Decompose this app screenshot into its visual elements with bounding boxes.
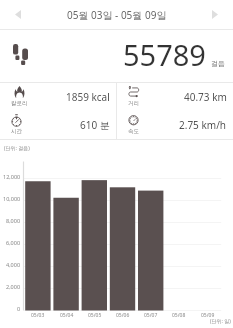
- button[interactable]: 칼로리: [11, 83, 110, 111]
- staticText: 6,000: [6, 239, 21, 246]
- staticText: 05/07: [144, 312, 158, 319]
- staticText: 1859 kcal: [66, 90, 110, 104]
- staticText: 05/06: [116, 312, 130, 319]
- button[interactable]: 거리: [128, 83, 227, 111]
- staticText: 시간: [11, 128, 22, 135]
- staticText: 2.75 km/h: [179, 118, 227, 132]
- button[interactable]: Next week: [197, 0, 233, 29]
- staticText: (단위: 걸음): [4, 145, 30, 152]
- staticText: 40.73 km: [184, 90, 227, 104]
- button[interactable]: Previous week: [0, 0, 36, 29]
- staticText: 55789: [123, 35, 206, 74]
- staticText: 0: [17, 305, 21, 312]
- button[interactable]: 시간: [11, 111, 110, 139]
- staticText: 05/09: [201, 312, 215, 319]
- staticText: 05/05: [88, 312, 102, 319]
- button[interactable]: 55789: [13, 30, 225, 82]
- staticText: 칼로리: [11, 100, 28, 107]
- staticText: 05/08: [172, 312, 186, 319]
- staticText: 610 분: [80, 118, 110, 132]
- staticText: 10,000: [3, 195, 21, 202]
- staticText: 4,000: [6, 261, 21, 268]
- staticText: 2,000: [6, 283, 21, 290]
- staticText: 속도: [128, 128, 139, 135]
- staticText: (단위: 일): [210, 318, 231, 325]
- staticText: 05/03: [31, 312, 45, 319]
- staticText: 12,000: [3, 173, 21, 180]
- staticText: 거리: [128, 100, 139, 107]
- staticText: 8,000: [6, 217, 21, 224]
- staticText: 05월 03일 - 05월 09일: [67, 8, 167, 22]
- button[interactable]: 속도: [128, 111, 227, 139]
- staticText: 05/04: [60, 312, 74, 319]
- staticText: 걸음: [211, 59, 225, 68]
